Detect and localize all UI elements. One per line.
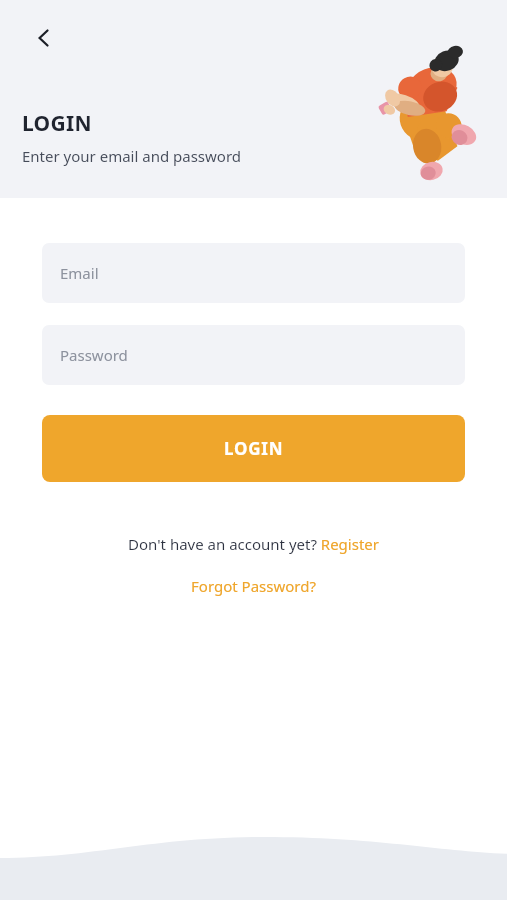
staticText: Password [60, 345, 128, 365]
button[interactable]: Don't have an account yet? Register [42, 534, 465, 554]
staticText: Forgot Password? [191, 576, 316, 596]
staticText: Don't have an account yet? Register [128, 534, 379, 554]
button[interactable]: Back [22, 16, 66, 60]
staticText: Email [60, 263, 99, 283]
button[interactable]: Password [42, 325, 465, 385]
staticText: LOGIN [224, 437, 284, 460]
staticText: Enter your email and password [22, 146, 242, 166]
button[interactable]: Forgot Password? [42, 576, 465, 596]
button[interactable]: Email [42, 243, 465, 303]
staticText: LOGIN [22, 109, 92, 138]
button[interactable]: LOGIN [42, 415, 465, 482]
